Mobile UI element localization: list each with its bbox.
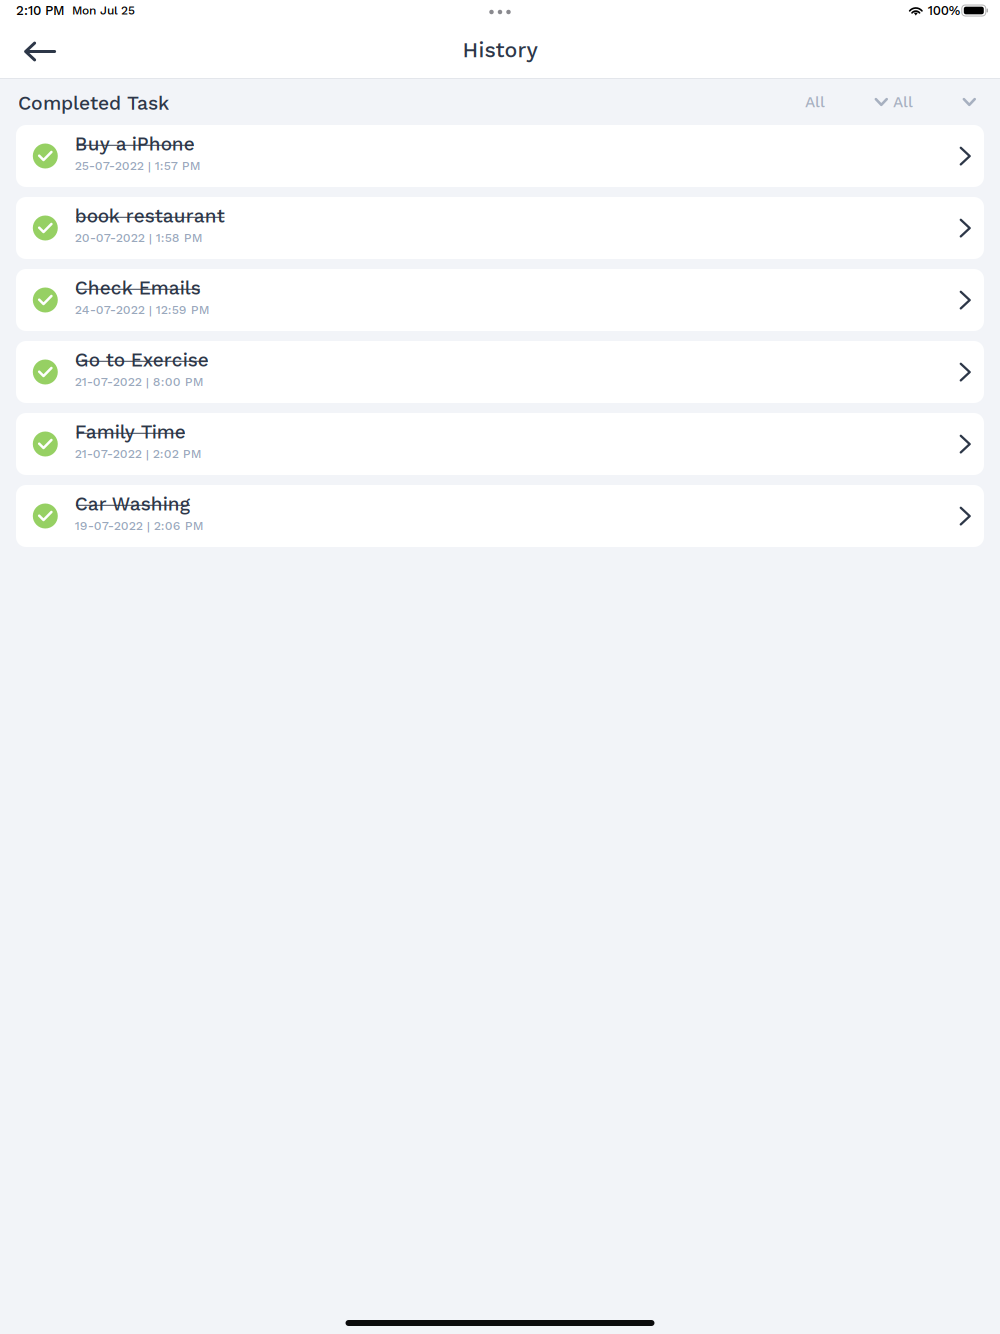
staticText: Check Emails [75, 277, 201, 299]
button[interactable]: book restaurant [16, 197, 984, 259]
button[interactable]: Car Washing [16, 485, 984, 547]
staticText: 25-07-2022 | 1:57 PM [75, 159, 201, 173]
button[interactable]: Family Time [16, 413, 984, 475]
button[interactable]: Check Emails [16, 269, 984, 331]
staticText: All [893, 93, 913, 111]
staticText: 100% [928, 3, 960, 18]
staticText: 21-07-2022 | 2:02 PM [75, 447, 202, 461]
button[interactable]: Go to Exercise [16, 341, 984, 403]
staticText: 19-07-2022 | 2:06 PM [75, 519, 204, 533]
button[interactable]: All [805, 93, 888, 111]
staticText: 20-07-2022 | 1:58 PM [75, 231, 203, 245]
staticText: Completed Task [18, 92, 169, 114]
staticText: 24-07-2022 | 12:59 PM [75, 303, 210, 317]
staticText: Family Time [75, 421, 186, 443]
button[interactable]: All [893, 93, 976, 111]
staticText: Mon Jul 25 [72, 3, 135, 18]
staticText: Car Washing [75, 493, 190, 515]
staticText: History [462, 37, 537, 62]
staticText: 21-07-2022 | 8:00 PM [75, 375, 204, 389]
staticText: Go to Exercise [75, 349, 209, 371]
staticText: 2:10 PM [16, 3, 65, 18]
staticText: book restaurant [75, 205, 225, 227]
staticText: Buy a iPhone [75, 133, 195, 155]
button[interactable]: Back [14, 31, 66, 71]
staticText: All [805, 93, 825, 111]
button[interactable]: Buy a iPhone [16, 125, 984, 187]
